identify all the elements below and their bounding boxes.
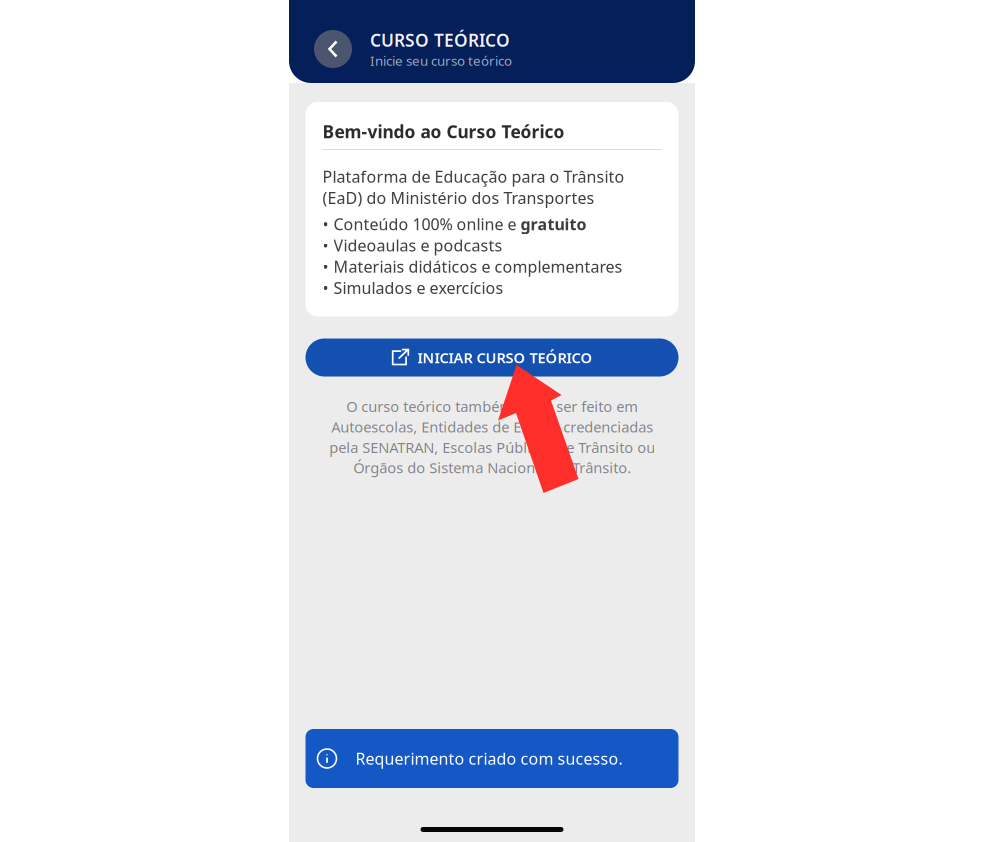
staticText: Inicie seu curso teórico <box>370 52 512 69</box>
staticText: Videoaulas e podcasts <box>333 235 502 256</box>
button[interactable]: INICIAR CURSO TEÓRICO <box>305 338 678 376</box>
button[interactable]: Voltar <box>314 30 352 68</box>
staticText: Requerimento criado com sucesso. <box>355 748 622 769</box>
staticText: Plataforma de Educação para o Trânsito <box>322 166 624 187</box>
staticText: • <box>322 213 328 235</box>
staticText: Simulados e exercícios <box>333 277 503 298</box>
staticText: Conteúdo 100% online e <box>333 213 520 235</box>
staticText: (EaD) do Ministério dos Transportes <box>322 187 594 208</box>
staticText: INICIAR CURSO TEÓRICO <box>417 348 592 367</box>
staticText: Órgãos do Sistema Nacional de Trânsito. <box>353 458 631 477</box>
staticText: • <box>322 235 328 256</box>
staticText: • <box>322 277 328 298</box>
staticText: • <box>322 256 328 277</box>
staticText: Bem-vindo ao Curso Teórico <box>322 120 564 143</box>
staticText: Materiais didáticos e complementares <box>333 256 622 277</box>
button[interactable]: Requerimento criado com sucesso. <box>305 729 678 788</box>
staticText: Autoescolas, Entidades de Ensino credenc… <box>331 417 653 436</box>
staticText: CURSO TEÓRICO <box>370 29 510 52</box>
staticText: gratuito <box>520 213 586 235</box>
staticText: pela SENATRAN, Escolas Públicas de Trâns… <box>329 437 655 457</box>
staticText: O curso teórico também pode ser feito em <box>346 396 638 416</box>
